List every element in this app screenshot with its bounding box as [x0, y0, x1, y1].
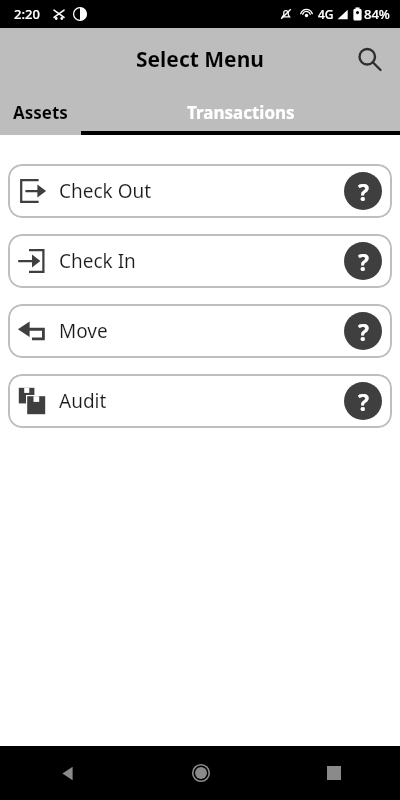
button[interactable]: Check In [8, 234, 392, 288]
button[interactable]: Move [8, 304, 392, 358]
staticText: 4G [318, 6, 334, 22]
button[interactable]: Back [0, 746, 134, 800]
button[interactable]: Help about Check In [344, 242, 382, 280]
staticText: ? [358, 246, 369, 277]
staticText: 2:20 [14, 5, 40, 23]
staticText: Select Menu [136, 45, 264, 74]
staticText: ? [358, 316, 369, 347]
staticText: ? [358, 176, 369, 207]
staticText: ? [358, 386, 369, 417]
button[interactable]: Check Out [8, 164, 392, 218]
staticText: Check Out [59, 178, 344, 204]
staticText: 84% [364, 5, 390, 23]
staticText: Transactions [187, 101, 295, 124]
button[interactable]: Help about Move [344, 312, 382, 350]
staticText: Move [59, 318, 344, 344]
button[interactable]: Assets [0, 90, 81, 135]
button[interactable]: Audit [8, 374, 392, 428]
staticText: Assets [13, 101, 68, 124]
button[interactable]: Recent apps [267, 746, 400, 800]
button[interactable]: Home [134, 746, 267, 800]
button[interactable]: Transactions [81, 90, 400, 135]
button[interactable]: Help about Audit [344, 382, 382, 420]
staticText: Check In [59, 248, 344, 274]
button[interactable]: Search [346, 36, 392, 82]
button[interactable]: Help about Check Out [344, 172, 382, 210]
staticText: Audit [59, 388, 344, 414]
